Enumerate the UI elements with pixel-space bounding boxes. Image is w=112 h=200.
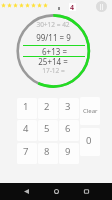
button[interactable]: Clear bbox=[80, 97, 100, 125]
staticText: 3 bbox=[65, 100, 71, 113]
staticText: 8 bbox=[44, 145, 50, 158]
staticText: 6+13 = bbox=[42, 46, 67, 57]
staticText: 1 bbox=[23, 100, 29, 113]
staticText: 30+12 = 42 bbox=[36, 20, 70, 29]
staticText: 0 bbox=[86, 134, 92, 147]
button[interactable]: 7 bbox=[17, 143, 37, 164]
button[interactable]: 5 bbox=[38, 120, 58, 141]
button[interactable]: 4 bbox=[17, 120, 37, 141]
staticText: 5 bbox=[44, 122, 50, 135]
staticText: 99/11 = 9 bbox=[36, 32, 71, 43]
button[interactable]: 8 bbox=[38, 143, 58, 164]
button[interactable]: 1 bbox=[17, 98, 37, 119]
staticText: 25+14 = bbox=[38, 56, 68, 67]
staticText: 7 bbox=[23, 145, 29, 158]
button[interactable]: 9 bbox=[59, 143, 79, 164]
button[interactable]: Home bbox=[46, 183, 66, 200]
staticText: Clear bbox=[83, 107, 98, 115]
staticText: 17-12 = bbox=[42, 66, 65, 75]
staticText: 9 bbox=[65, 145, 71, 158]
button[interactable]: Back bbox=[16, 183, 36, 200]
button[interactable]: Pause bbox=[96, 1, 107, 12]
staticText: 4 bbox=[70, 3, 75, 11]
staticText: 2 bbox=[44, 100, 50, 113]
button[interactable]: 3 bbox=[59, 98, 79, 119]
button[interactable]: 0 bbox=[80, 128, 100, 156]
button[interactable]: 2 bbox=[38, 98, 58, 119]
button[interactable]: Recents bbox=[76, 183, 96, 200]
button[interactable]: 6 bbox=[59, 120, 79, 141]
staticText: 4 bbox=[23, 122, 29, 135]
staticText: 6 bbox=[65, 122, 71, 135]
